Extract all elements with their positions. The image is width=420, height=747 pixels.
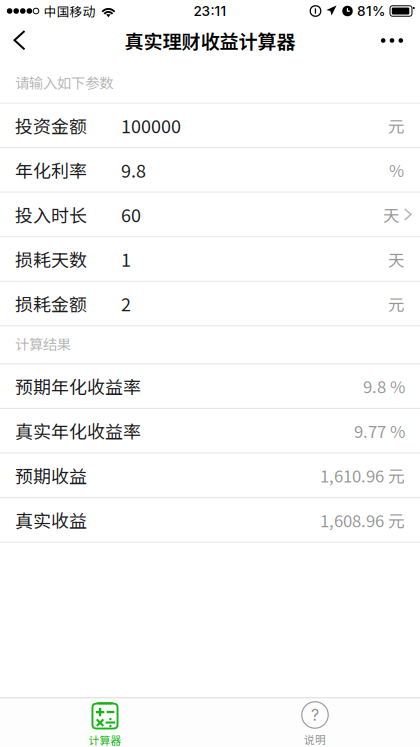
staticText: 1,610.96 元 (320, 463, 405, 487)
staticText: 1 (121, 246, 131, 272)
staticText: 9.8 % (363, 374, 405, 398)
staticText: 损耗天数 (15, 246, 87, 272)
staticText: % (389, 158, 404, 182)
button[interactable]: 损耗金额 (0, 282, 420, 326)
staticText: 100000 (121, 112, 181, 138)
staticText: 60 (121, 201, 141, 227)
staticText: 中国移动 (44, 2, 96, 20)
staticText: 预期收益 (15, 462, 87, 488)
button[interactable]: Back (0, 22, 40, 58)
staticText: 计算结果 (15, 333, 71, 354)
staticText: 计算器 (88, 732, 121, 747)
button[interactable]: 投资金额 (0, 103, 420, 148)
staticText: 81% (357, 3, 386, 19)
staticText: 天 (388, 247, 404, 271)
staticText: 年化利率 (15, 157, 87, 183)
button[interactable]: 计算器 (0, 698, 210, 747)
staticText: 预期年化收益率 (15, 373, 141, 399)
button[interactable]: More options (370, 22, 414, 58)
staticText: 元 (388, 292, 404, 315)
staticText: 请输入如下参数 (15, 72, 113, 93)
staticText: 真实理财收益计算器 (124, 27, 295, 54)
button[interactable]: ? (210, 698, 420, 747)
staticText: 投入时长 (15, 201, 87, 227)
staticText: 1,608.96 元 (320, 508, 405, 532)
button[interactable]: 损耗天数 (0, 237, 420, 282)
staticText: 元 (388, 113, 404, 137)
button[interactable]: 年化利率 (0, 148, 420, 193)
staticText: 说明 (304, 732, 326, 747)
staticText: 天 (383, 203, 399, 226)
staticText: 2 (121, 290, 131, 317)
staticText: 损耗金额 (15, 290, 87, 317)
staticText: 真实年化收益率 (15, 418, 141, 444)
staticText: 9.77 % (354, 419, 405, 443)
staticText: 真实收益 (15, 507, 87, 533)
staticText: 23:11 (193, 3, 226, 19)
staticText: ? (311, 705, 319, 725)
button[interactable]: 投入时长 (0, 193, 420, 237)
staticText: 9.8 (121, 157, 146, 183)
staticText: 投资金额 (15, 112, 87, 138)
